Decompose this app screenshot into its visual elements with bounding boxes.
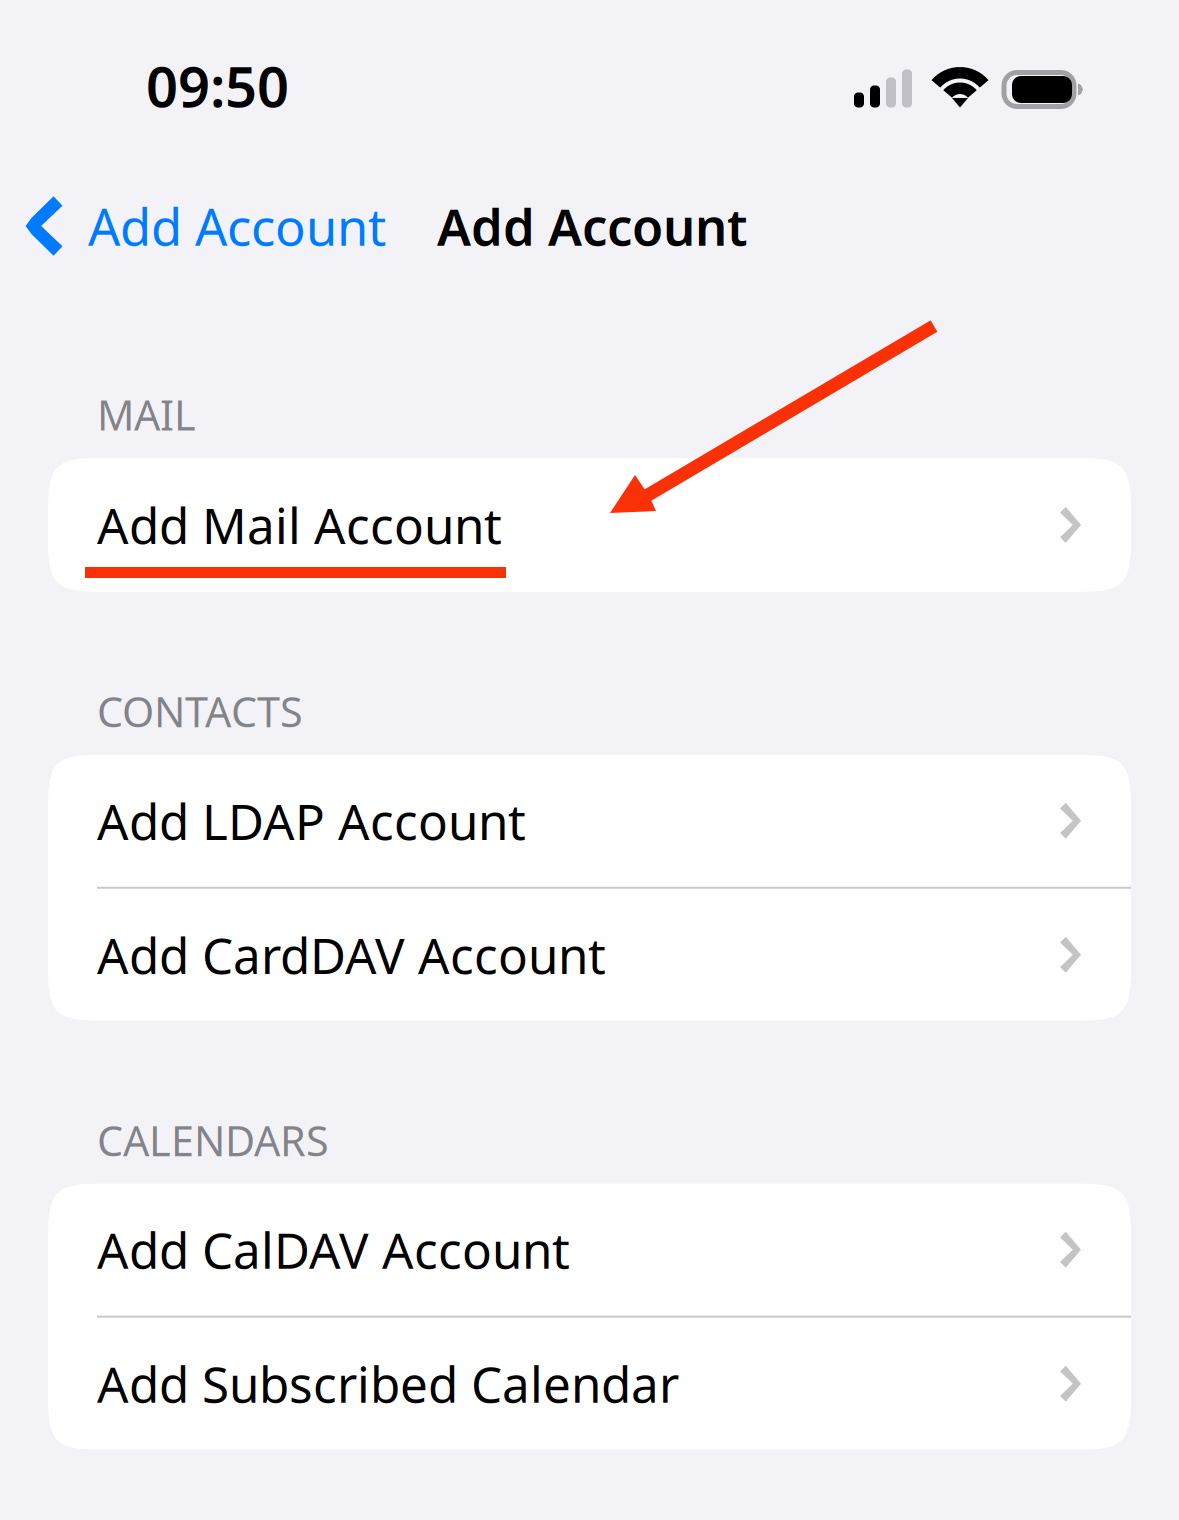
- staticText: Add Account: [437, 192, 748, 260]
- staticText: Add LDAP Account: [97, 788, 526, 853]
- button[interactable]: Add Subscribed Calendar: [48, 1318, 1131, 1450]
- staticText: 09:50: [146, 48, 289, 123]
- staticText: Add CalDAV Account: [97, 1217, 570, 1282]
- staticText: CONTACTS: [97, 684, 303, 739]
- staticText: Add Mail Account: [97, 492, 502, 558]
- staticText: Add Account: [88, 192, 386, 260]
- button[interactable]: Add Mail Account: [48, 458, 1131, 592]
- button[interactable]: Add LDAP Account: [48, 755, 1131, 887]
- staticText: Add CardDAV Account: [97, 922, 606, 987]
- button[interactable]: Add CardDAV Account: [48, 889, 1131, 1021]
- button[interactable]: Add CalDAV Account: [48, 1184, 1131, 1316]
- button[interactable]: Add Account: [0, 171, 402, 281]
- staticText: CALENDARS: [97, 1113, 329, 1168]
- staticText: MAIL: [97, 387, 196, 442]
- staticText: Add Subscribed Calendar: [97, 1351, 679, 1416]
